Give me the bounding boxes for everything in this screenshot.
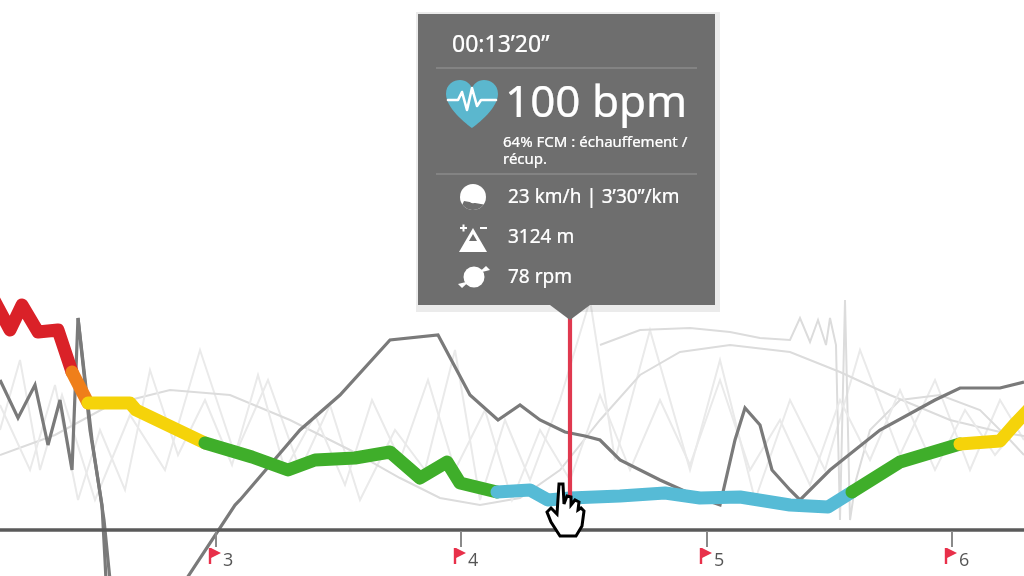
other: Chart data point at 00:13'20" bbox=[0, 0, 1024, 576]
button[interactable]: Chart data point at 00:13'20" bbox=[0, 0, 1024, 576]
